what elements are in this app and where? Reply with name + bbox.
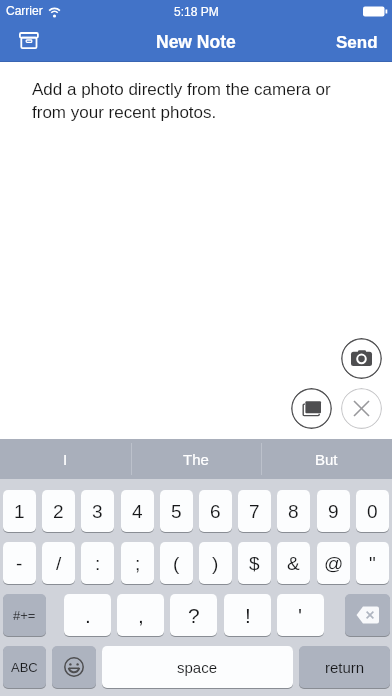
staticText: ; (135, 553, 141, 574)
staticText: , (138, 604, 144, 627)
staticText: ! (245, 604, 251, 627)
button[interactable]: The (130, 439, 261, 479)
button[interactable]: 9 (317, 490, 350, 532)
button[interactable]: 0 (356, 490, 389, 532)
staticText: New Note (156, 32, 236, 52)
button[interactable]: #+= (3, 594, 46, 636)
staticText: 3 (92, 501, 103, 522)
staticText: $ (249, 553, 260, 574)
button[interactable]: 2 (42, 490, 75, 532)
button[interactable]: But (261, 439, 392, 479)
button[interactable]: Send (332, 29, 382, 56)
button[interactable] (345, 594, 390, 636)
staticText: " (369, 553, 376, 574)
button[interactable]: ' (277, 594, 324, 636)
staticText: 0 (367, 501, 378, 522)
staticText: ( (173, 553, 180, 574)
button[interactable]: $ (238, 542, 271, 584)
button[interactable] (341, 338, 382, 379)
staticText: . (85, 604, 91, 627)
staticText: Carrier (6, 4, 43, 17)
button[interactable]: ( (160, 542, 193, 584)
staticText: 5:18 PM (174, 5, 219, 18)
staticText: : (95, 553, 101, 574)
staticText: Add a photo directly from the camera or … (32, 80, 331, 122)
staticText: I (63, 451, 68, 468)
button[interactable]: 4 (121, 490, 154, 532)
staticText: ABC (11, 660, 38, 675)
staticText: space (177, 659, 218, 676)
staticText: Send (336, 33, 378, 52)
button[interactable]: 5 (160, 490, 193, 532)
button[interactable]: return (299, 646, 390, 688)
staticText: - (16, 553, 23, 574)
button[interactable]: 3 (81, 490, 114, 532)
button[interactable]: : (81, 542, 114, 584)
button[interactable]: 8 (277, 490, 310, 532)
staticText: / (56, 553, 62, 574)
button[interactable]: / (42, 542, 75, 584)
staticText: ) (212, 553, 219, 574)
staticText: ' (298, 604, 303, 627)
button[interactable]: ABC (3, 646, 46, 688)
button[interactable]: @ (317, 542, 350, 584)
staticText: #+= (13, 608, 36, 623)
staticText: The (183, 451, 209, 468)
button[interactable]: space (102, 646, 293, 688)
staticText: 2 (53, 501, 64, 522)
button[interactable] (341, 388, 382, 429)
staticText: & (287, 553, 300, 574)
staticText: 4 (132, 501, 143, 522)
staticText: 9 (328, 501, 339, 522)
staticText: 8 (288, 501, 299, 522)
button[interactable]: ? (170, 594, 217, 636)
button[interactable] (291, 388, 332, 429)
button[interactable]: 6 (199, 490, 232, 532)
button[interactable] (52, 646, 96, 688)
button[interactable]: . (64, 594, 111, 636)
staticText: 6 (210, 501, 221, 522)
button[interactable]: ! (224, 594, 271, 636)
staticText: return (325, 659, 365, 676)
staticText: 1 (14, 501, 25, 522)
button[interactable]: I (0, 439, 130, 479)
button[interactable]: - (3, 542, 36, 584)
staticText: 7 (249, 501, 260, 522)
button[interactable]: & (277, 542, 310, 584)
button[interactable] (12, 25, 46, 59)
button[interactable]: ; (121, 542, 154, 584)
staticText: 5 (171, 501, 182, 522)
staticText: @ (324, 553, 344, 574)
staticText: But (315, 451, 338, 468)
button[interactable]: , (117, 594, 164, 636)
staticText: ? (188, 604, 200, 627)
button[interactable]: 1 (3, 490, 36, 532)
button[interactable]: ) (199, 542, 232, 584)
button[interactable]: " (356, 542, 389, 584)
button[interactable]: 7 (238, 490, 271, 532)
